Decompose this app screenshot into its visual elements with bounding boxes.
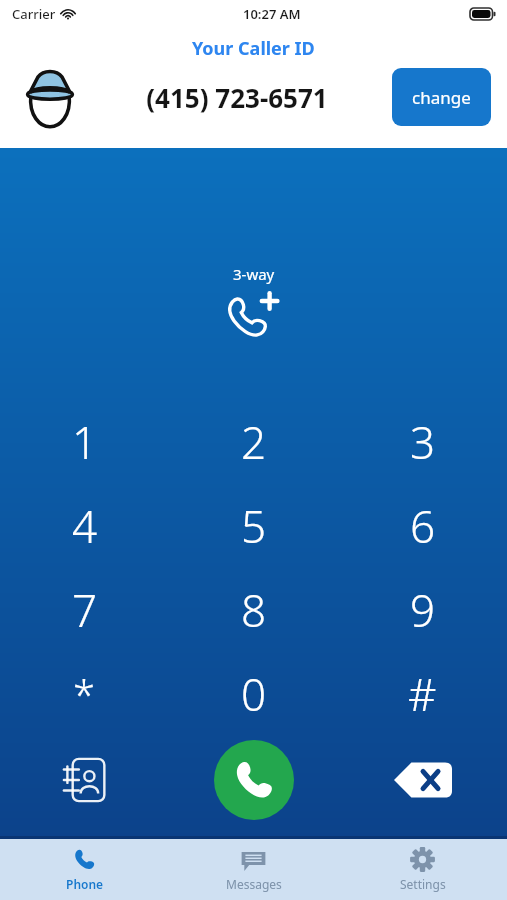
staticText: * bbox=[73, 667, 96, 721]
button[interactable]: Delete bbox=[338, 736, 507, 824]
staticText: 4 bbox=[72, 496, 98, 556]
staticText: 10:27 AM bbox=[243, 5, 301, 23]
button[interactable]: 9 bbox=[338, 568, 507, 652]
button[interactable]: 6 bbox=[338, 484, 507, 568]
staticText: change bbox=[412, 86, 471, 109]
staticText: Settings bbox=[400, 876, 446, 892]
button[interactable]: 1 bbox=[0, 400, 169, 484]
button[interactable]: Phone bbox=[0, 839, 169, 900]
staticText: 7 bbox=[72, 580, 98, 640]
staticText: Your Caller ID bbox=[192, 36, 315, 61]
button[interactable]: Contacts bbox=[0, 736, 169, 824]
button[interactable]: change bbox=[392, 68, 491, 126]
button[interactable]: 3-way call bbox=[218, 260, 290, 342]
button[interactable]: 4 bbox=[0, 484, 169, 568]
button[interactable]: 0 bbox=[169, 652, 338, 736]
staticText: 5 bbox=[241, 496, 267, 556]
staticText: 2 bbox=[241, 412, 267, 472]
button[interactable]: 3 bbox=[338, 400, 507, 484]
staticText: 9 bbox=[410, 580, 436, 640]
staticText: 3-way bbox=[233, 264, 275, 284]
staticText: 1 bbox=[72, 412, 98, 472]
staticText: Carrier bbox=[12, 5, 56, 23]
staticText: 6 bbox=[410, 496, 436, 556]
staticText: Messages bbox=[226, 876, 282, 892]
staticText: 3 bbox=[410, 412, 436, 472]
button[interactable]: Messages bbox=[169, 839, 338, 900]
button[interactable]: 8 bbox=[169, 568, 338, 652]
button[interactable]: Call bbox=[214, 740, 294, 820]
staticText: Phone bbox=[66, 876, 104, 892]
button[interactable]: Settings bbox=[338, 839, 507, 900]
staticText: # bbox=[408, 664, 437, 724]
staticText: 0 bbox=[241, 664, 267, 724]
staticText: 8 bbox=[241, 580, 267, 640]
button[interactable]: # bbox=[338, 652, 507, 736]
button[interactable]: 2 bbox=[169, 400, 338, 484]
staticText: (415) 723-6571 bbox=[88, 80, 386, 115]
button[interactable]: * bbox=[0, 652, 169, 736]
button[interactable]: 7 bbox=[0, 568, 169, 652]
button[interactable]: 5 bbox=[169, 484, 338, 568]
